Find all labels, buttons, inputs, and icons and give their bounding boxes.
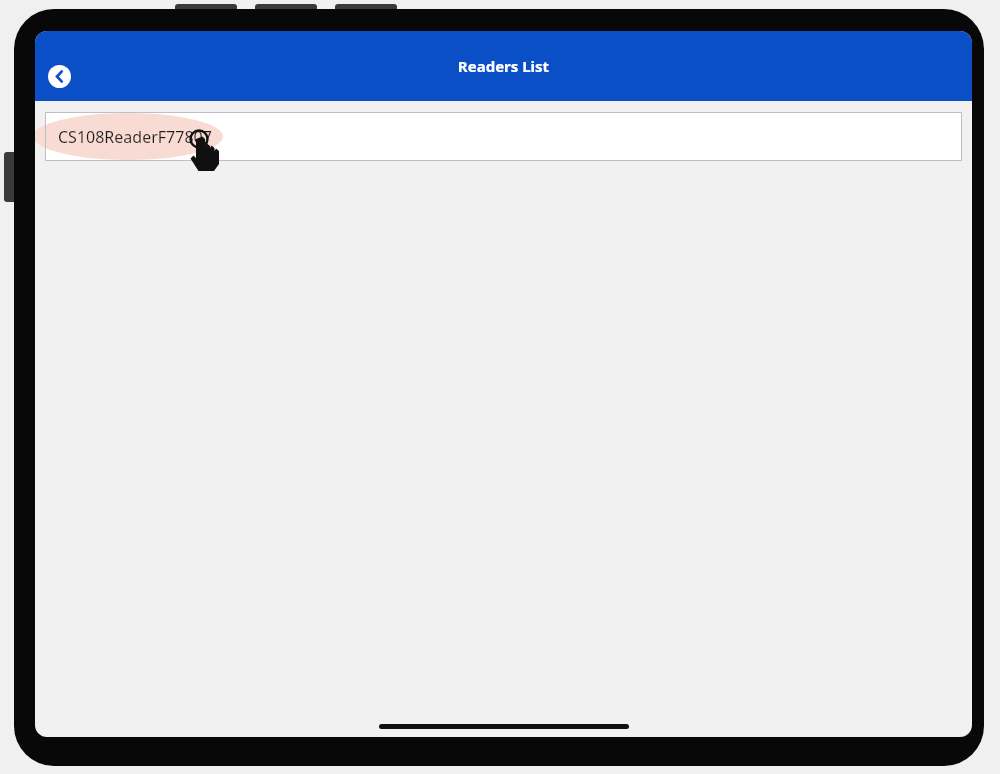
staticText: Readers List xyxy=(35,56,972,76)
button[interactable]: CS108ReaderF77807 xyxy=(45,112,962,161)
button[interactable]: Back xyxy=(48,65,71,88)
staticText: CS108ReaderF77807 xyxy=(58,126,212,148)
